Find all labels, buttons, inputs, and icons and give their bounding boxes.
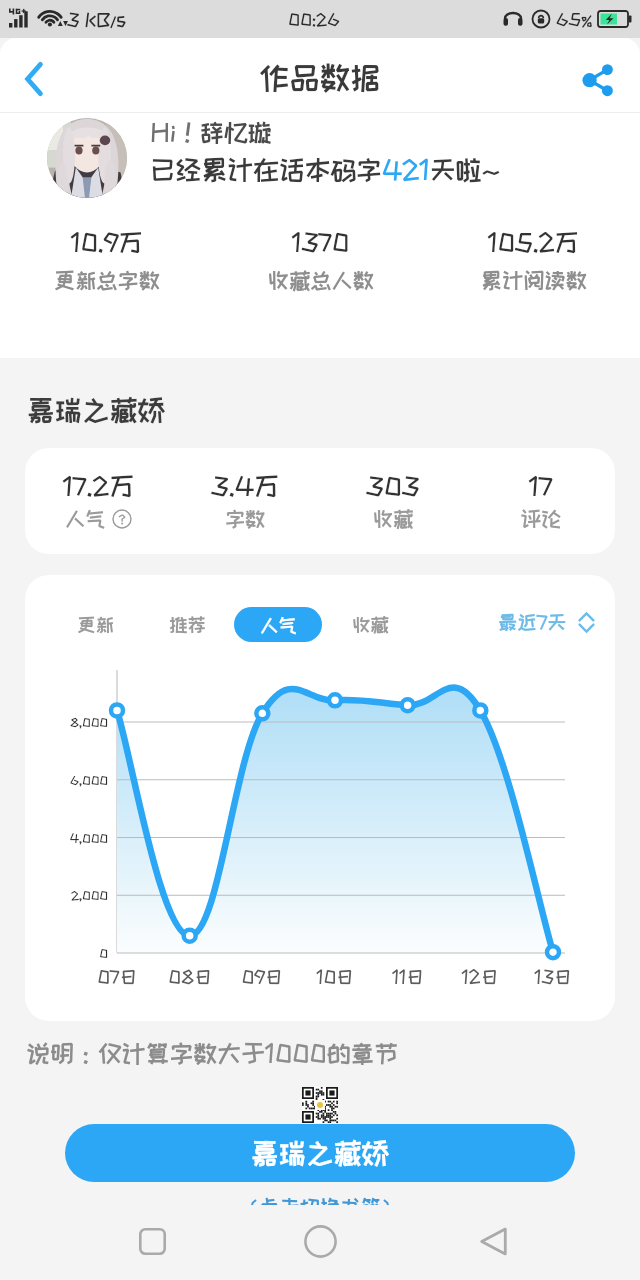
staticText: 65% (556, 10, 593, 28)
staticText: 421 (382, 155, 430, 183)
button[interactable]: 17.2万 (25, 472, 172, 530)
staticText: 3.4万 (211, 472, 280, 499)
staticText: 3 KB/s (67, 10, 127, 29)
staticText: 字数 (225, 508, 266, 530)
staticText: 嘉瑞之藏娇 (251, 1138, 389, 1168)
staticText: 收藏 (373, 508, 414, 530)
staticText: Hi！ (150, 119, 200, 145)
staticText: 10日 (299, 967, 371, 986)
staticText: 收藏 (352, 614, 389, 634)
staticText: 10.9万 (71, 229, 143, 255)
button[interactable]: Back (461, 1209, 525, 1273)
staticText: 人气 (65, 508, 106, 530)
staticText: 17 (529, 472, 553, 499)
staticText: 4,000 (25, 832, 108, 845)
staticText: 作品数据 (259, 61, 381, 94)
staticText: 2,000 (25, 889, 108, 902)
staticText: 08日 (154, 967, 226, 986)
staticText: 辞忆璇 (200, 119, 272, 145)
button[interactable]: Home (288, 1209, 352, 1273)
staticText: 17.2万 (63, 472, 135, 499)
staticText: 09日 (226, 967, 298, 986)
button[interactable]: 最近7天 (498, 612, 595, 633)
button[interactable]: 嘉瑞之藏娇 (65, 1124, 575, 1182)
button[interactable]: 3.4万 (172, 472, 319, 530)
button[interactable]: Recent apps (120, 1209, 184, 1273)
staticText: 105.2万 (488, 229, 579, 255)
staticText: 8,000 (25, 716, 108, 729)
staticText: 收藏总人数 (268, 269, 374, 292)
staticText: 07日 (81, 967, 153, 986)
staticText: 更新 (77, 614, 114, 634)
button[interactable]: 推荐 (151, 606, 223, 641)
staticText: 6,000 (25, 774, 108, 787)
staticText: 天啦~ (430, 155, 501, 183)
staticText: 303 (366, 472, 420, 499)
button[interactable]: 人气 (234, 607, 322, 642)
staticText: ? (119, 513, 125, 526)
staticText: 说明：仅计算字数大于1000的章节 (26, 1040, 399, 1066)
staticText: （点击切换书籍） (239, 1196, 401, 1218)
staticText: 人气 (260, 615, 297, 635)
staticText: 累计阅读数 (481, 269, 587, 292)
button[interactable]: 更新 (59, 606, 131, 641)
staticText: 1370 (292, 229, 350, 255)
button[interactable]: Back (9, 54, 59, 104)
staticText: 最近7天 (498, 612, 567, 633)
staticText: 00:26 (288, 10, 340, 28)
staticText: 更新总字数 (54, 269, 160, 292)
button[interactable]: 303 (319, 472, 467, 530)
staticText: 12日 (444, 967, 516, 986)
staticText: 0 (25, 947, 108, 960)
staticText: 嘉瑞之藏娇 (27, 395, 165, 425)
staticText: 推荐 (169, 614, 206, 634)
staticText: 评论 (521, 508, 562, 530)
button[interactable]: 17 (467, 472, 615, 530)
staticText: 已经累计在话本码字 (150, 155, 382, 183)
button[interactable]: Share (572, 54, 622, 104)
button[interactable]: 收藏 (334, 606, 406, 641)
staticText: 13日 (517, 967, 589, 986)
staticText: 11日 (372, 967, 444, 986)
